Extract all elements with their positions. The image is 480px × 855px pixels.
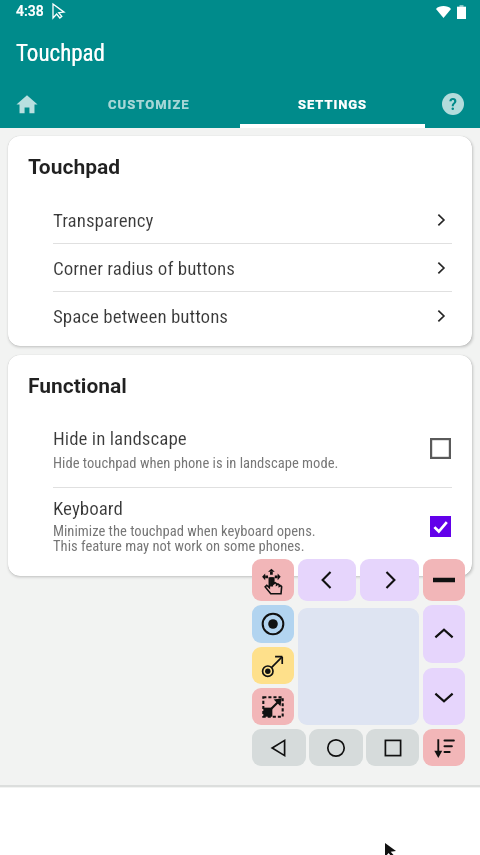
button[interactable]: Minimize xyxy=(423,559,465,601)
staticText: CUSTOMIZE xyxy=(108,97,190,112)
button[interactable]: Keyboard xyxy=(8,488,472,568)
button[interactable]: SETTINGS xyxy=(240,80,426,128)
button[interactable]: Transparency xyxy=(8,196,472,244)
staticText: Touchpad xyxy=(28,155,121,180)
button[interactable]: Back xyxy=(252,729,306,766)
button[interactable]: Home xyxy=(0,80,54,128)
staticText: 4:38 xyxy=(16,3,44,19)
button[interactable]: Recents xyxy=(366,729,419,766)
button[interactable]: Scroll down xyxy=(423,668,465,725)
staticText: Hide touchpad when phone is in landscape… xyxy=(53,454,339,471)
staticText: Space between buttons xyxy=(53,305,229,327)
staticText: Functional xyxy=(28,374,127,399)
button[interactable]: Click xyxy=(252,605,294,643)
button[interactable]: Help xyxy=(426,80,480,128)
button[interactable]: Corner radius of buttons xyxy=(8,244,472,292)
button[interactable]: Resize xyxy=(252,688,294,725)
staticText: Transparency xyxy=(53,209,154,231)
button[interactable]: Home xyxy=(309,729,363,766)
button[interactable]: CUSTOMIZE xyxy=(54,80,240,128)
staticText: Corner radius of buttons xyxy=(53,257,235,279)
button[interactable]: Previous xyxy=(298,559,356,601)
button[interactable]: Next xyxy=(360,559,419,601)
staticText: ? xyxy=(449,95,457,114)
staticText: Minimize the touchpad when keyboard open… xyxy=(53,522,316,555)
button[interactable]: Sort xyxy=(423,729,465,766)
staticText: Hide in landscape xyxy=(53,427,187,449)
staticText: Touchpad xyxy=(16,40,106,67)
staticText: Keyboard xyxy=(53,497,123,519)
staticText: SETTINGS xyxy=(298,97,368,112)
button[interactable]: Drag pointer xyxy=(252,647,294,684)
button[interactable]: Hide in landscape xyxy=(8,419,472,487)
button[interactable]: Scroll up xyxy=(423,605,465,663)
button[interactable]: Move touchpad xyxy=(252,559,294,601)
button[interactable]: Space between buttons xyxy=(8,292,472,340)
